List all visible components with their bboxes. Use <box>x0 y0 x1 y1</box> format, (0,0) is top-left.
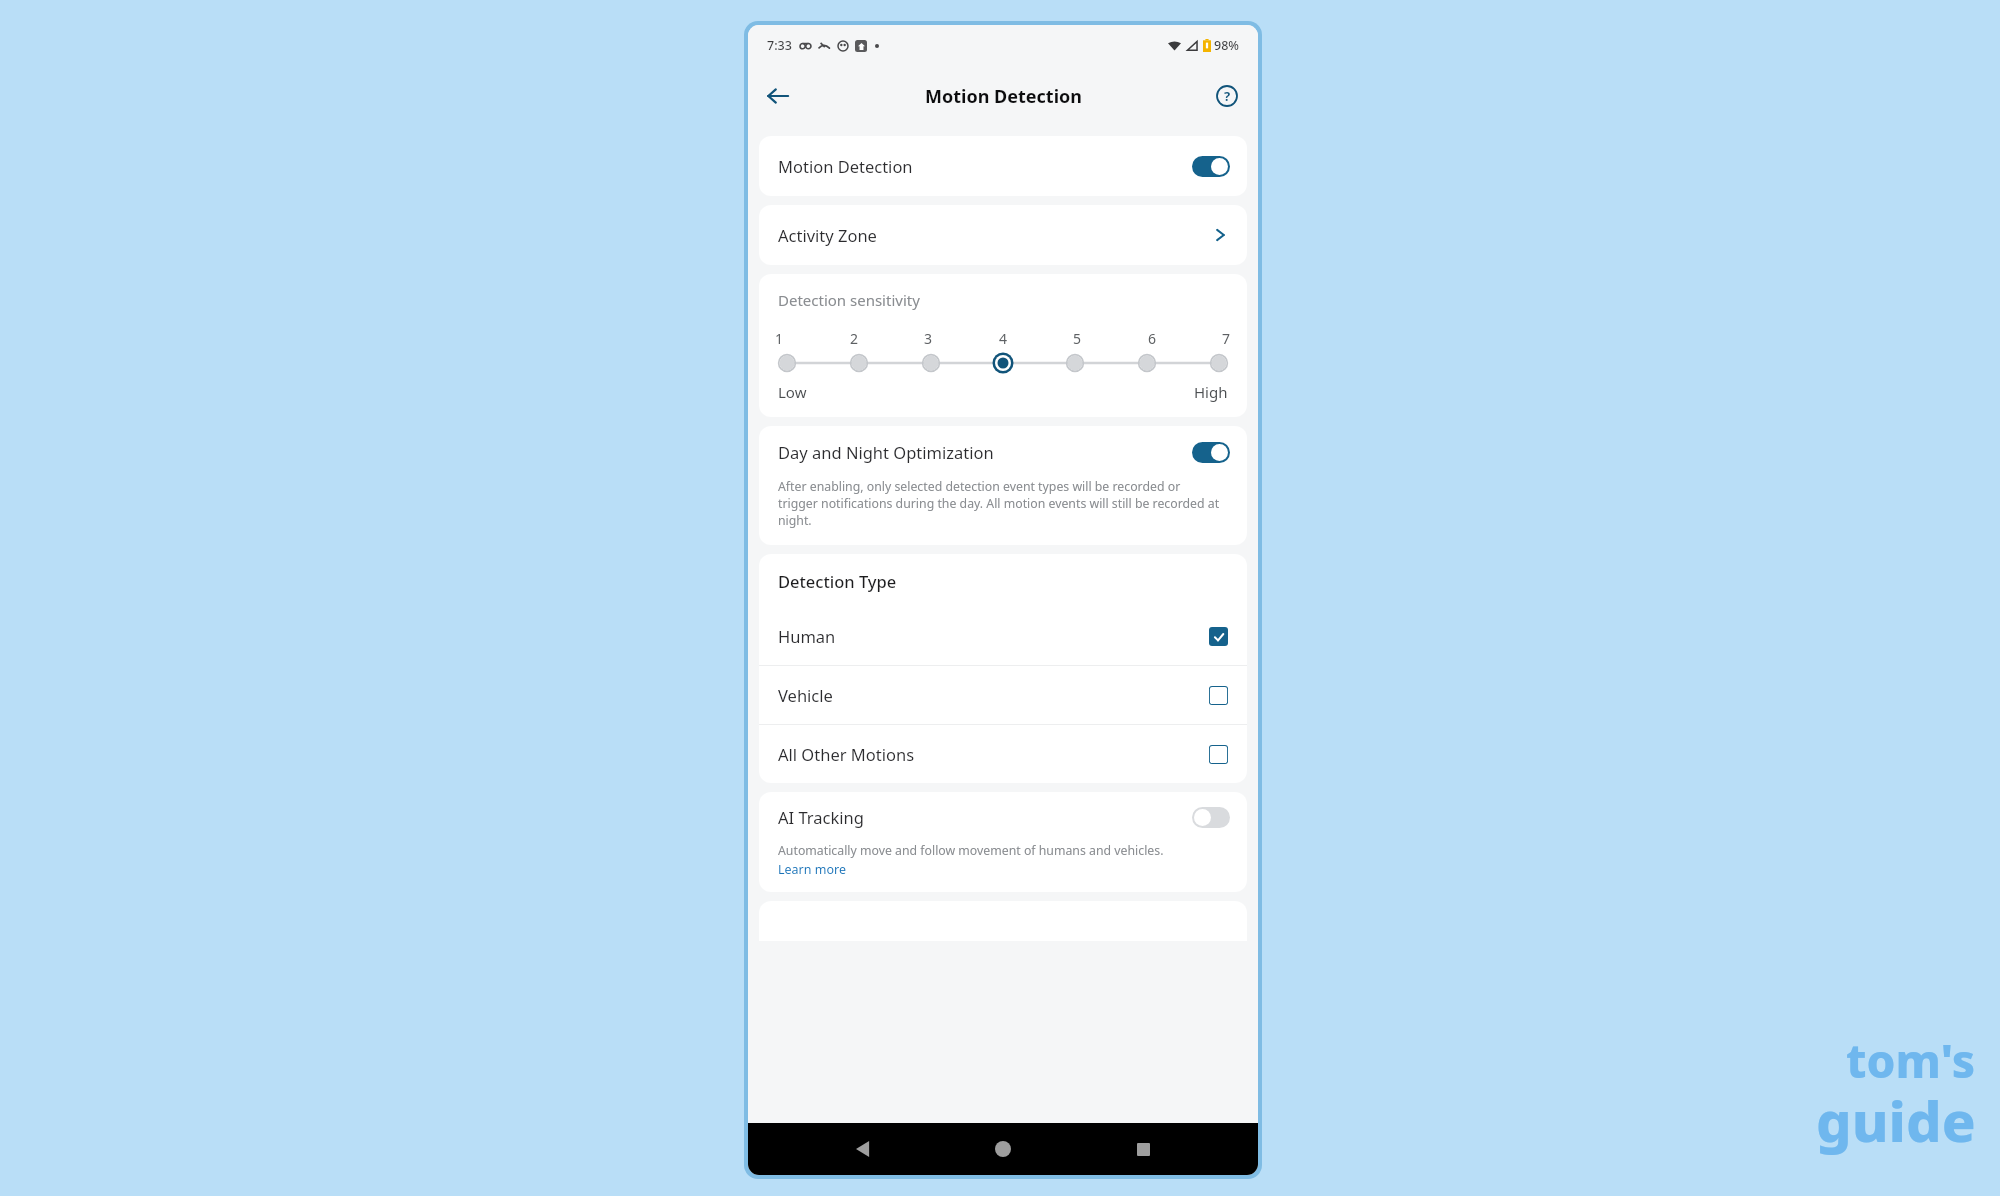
staticText: 3 <box>924 329 933 348</box>
button[interactable]: Human <box>759 607 1247 665</box>
button[interactable]: Activity Zone <box>759 205 1247 265</box>
button[interactable]: Back <box>756 74 800 118</box>
staticText: Motion Detection <box>925 84 1082 109</box>
button[interactable]: AI Tracking <box>759 792 1247 842</box>
staticText: Low <box>778 382 807 402</box>
staticText: AI Tracking <box>778 806 864 828</box>
staticText: guide <box>1816 1082 1976 1158</box>
button[interactable]: Learn more <box>778 861 846 878</box>
staticText: Automatically move and follow movement o… <box>778 842 1164 859</box>
staticText: tom's <box>1846 1029 1976 1092</box>
staticText: 7:33 <box>767 37 792 54</box>
button[interactable]: Motion Detection <box>759 136 1247 196</box>
button[interactable]: Back <box>840 1125 888 1173</box>
staticText: After enabling, only selected detection … <box>778 478 1223 529</box>
staticText: High <box>1194 382 1228 402</box>
staticText: Vehicle <box>778 684 833 706</box>
staticText: Day and Night Optimization <box>778 441 994 463</box>
staticText: 5 <box>1073 329 1082 348</box>
staticText: 4 <box>999 329 1008 348</box>
button[interactable]: Home <box>979 1125 1027 1173</box>
staticText: Human <box>778 625 836 647</box>
button[interactable]: Recent apps <box>1119 1125 1167 1173</box>
staticText: Learn more <box>778 861 846 878</box>
staticText: Detection sensitivity <box>778 290 920 310</box>
staticText: Detection Type <box>778 570 897 592</box>
staticText: Activity Zone <box>778 224 877 246</box>
staticText: 7 <box>1222 329 1231 348</box>
staticText: ? <box>1224 87 1231 105</box>
staticText: Motion Detection <box>778 155 913 177</box>
staticText: All Other Motions <box>778 743 915 765</box>
staticText: 2 <box>850 329 859 348</box>
button[interactable]: Vehicle <box>759 666 1247 724</box>
staticText: 98% <box>1214 37 1239 54</box>
button[interactable]: Help <box>1206 75 1248 117</box>
button[interactable]: All Other Motions <box>759 725 1247 783</box>
staticText: 6 <box>1148 329 1157 348</box>
staticText: 1 <box>775 329 784 348</box>
button[interactable]: Day and Night Optimization <box>759 426 1247 478</box>
